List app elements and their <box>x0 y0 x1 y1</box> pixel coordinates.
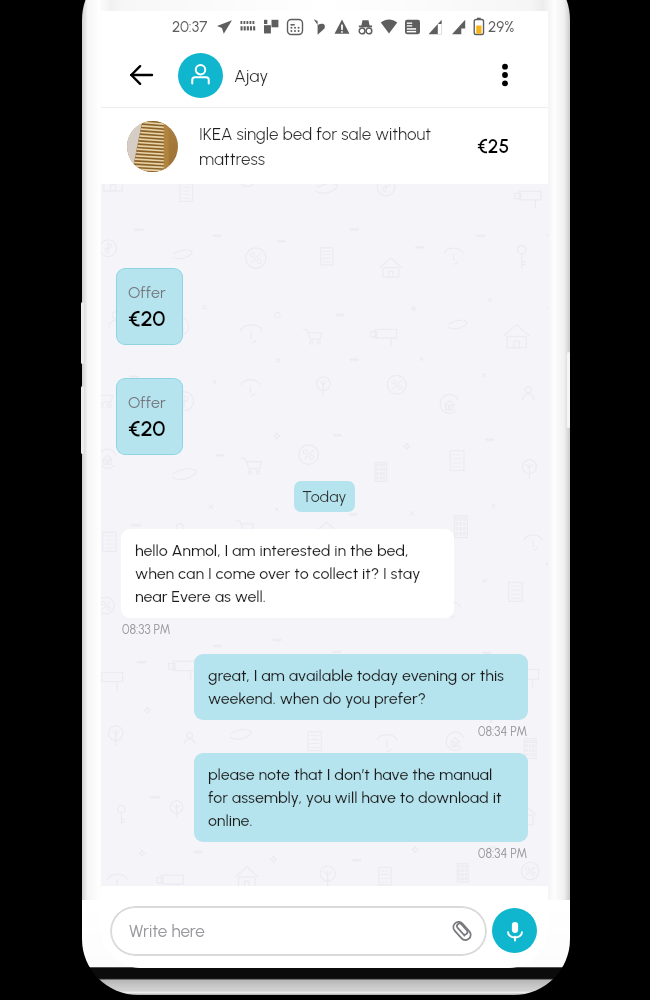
button[interactable]: Profile photo <box>178 53 223 98</box>
button[interactable]: Offer <box>116 268 183 345</box>
staticText: €25 <box>477 135 510 158</box>
staticText: Offer <box>128 283 166 302</box>
staticText: Today <box>302 487 347 506</box>
button[interactable]: Attach file <box>445 914 479 948</box>
button[interactable]: please note that I don’t have the manual… <box>194 753 528 842</box>
staticText: hello Anmol, I am interested in the bed,… <box>135 541 440 606</box>
button[interactable]: Back <box>120 54 162 96</box>
staticText: IKEA single bed for sale without mattres… <box>199 124 467 169</box>
staticText: €20 <box>128 415 166 441</box>
button[interactable]: Offer <box>116 378 183 455</box>
staticText: 20:37 <box>172 18 208 36</box>
staticText: Offer <box>128 393 166 412</box>
staticText: Write here <box>129 921 445 941</box>
button[interactable]: hello Anmol, I am interested in the bed,… <box>121 529 454 618</box>
staticText: Ajay <box>234 65 269 86</box>
button[interactable]: Write here <box>110 906 487 956</box>
staticText: €20 <box>128 305 166 331</box>
staticText: 08:34 PM <box>478 846 528 861</box>
staticText: 08:33 PM <box>122 622 171 637</box>
staticText: please note that I don’t have the manual… <box>208 765 514 830</box>
button[interactable]: Record voice message <box>492 908 537 953</box>
staticText: 29% <box>488 18 515 36</box>
button[interactable]: Today <box>294 481 355 512</box>
staticText: great, I am available today evening or t… <box>208 666 514 708</box>
staticText: 08:34 PM <box>478 724 528 739</box>
button[interactable]: great, I am available today evening or t… <box>194 654 528 720</box>
button[interactable]: More options <box>482 52 528 98</box>
button[interactable]: IKEA single bed for sale without mattres… <box>101 108 548 184</box>
